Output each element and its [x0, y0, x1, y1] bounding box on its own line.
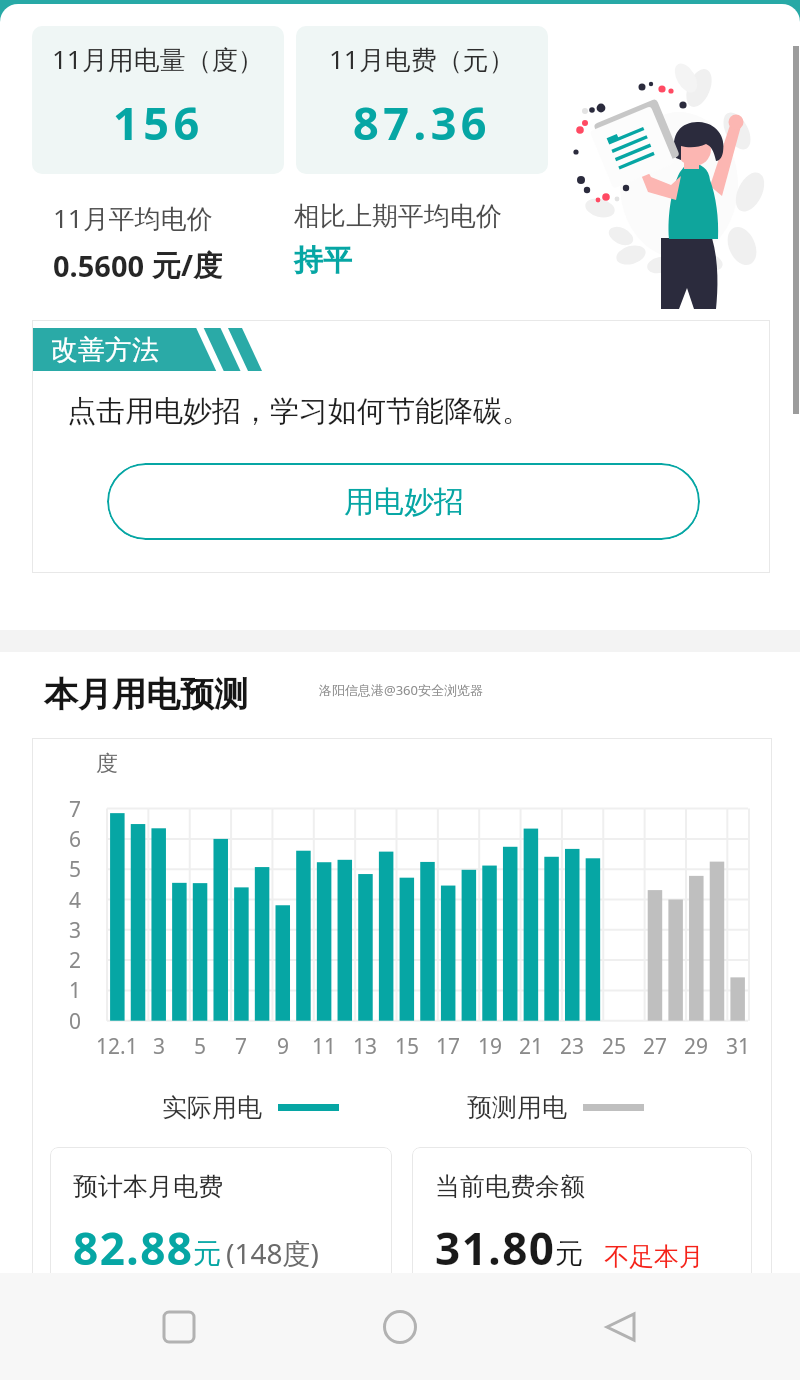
button[interactable]: 用电妙招	[107, 463, 700, 540]
staticText: (148度)	[226, 1234, 319, 1272]
staticText: 元	[555, 1236, 583, 1271]
staticText: 1	[69, 976, 82, 1005]
staticText: 改善方法	[51, 333, 159, 367]
staticText: 13	[353, 1032, 378, 1060]
staticText: 不足本月	[604, 1241, 704, 1272]
staticText: 0	[69, 1007, 82, 1036]
staticText: 用电妙招	[344, 483, 464, 521]
staticText: 预计本月电费	[73, 1171, 223, 1202]
button[interactable]: Back	[579, 1285, 663, 1369]
staticText: 实际用电	[162, 1092, 262, 1123]
staticText: 19	[478, 1032, 503, 1060]
staticText: 洛阳信息港@360安全浏览器	[319, 681, 483, 699]
staticText: 29	[684, 1032, 709, 1060]
button[interactable]: Home	[358, 1285, 442, 1369]
staticText: 21	[519, 1032, 544, 1060]
staticText: 本月用电预测	[44, 673, 248, 716]
staticText: 点击用电妙招，学习如何节能降碳。	[67, 393, 531, 430]
staticText: 25	[602, 1032, 627, 1060]
staticText: 2	[69, 946, 82, 975]
staticText: 3	[153, 1032, 166, 1060]
staticText: 23	[560, 1032, 585, 1060]
staticText: 82.88	[73, 1218, 194, 1278]
staticText: 相比上期平均电价	[294, 200, 502, 233]
staticText: 27	[643, 1032, 668, 1060]
staticText: 7	[235, 1032, 248, 1060]
staticText: 预测用电	[467, 1092, 567, 1123]
staticText: 4	[69, 886, 82, 915]
staticText: 5	[69, 855, 82, 884]
staticText: 15	[395, 1032, 420, 1060]
staticText: 5	[194, 1032, 207, 1060]
staticText: 31.80	[435, 1218, 556, 1278]
staticText: 87.36	[353, 92, 492, 153]
button[interactable]: 11月电费（元）	[296, 26, 548, 174]
staticText: 11月电费（元）	[329, 41, 515, 77]
button[interactable]: 11月用电量（度）	[32, 26, 284, 174]
staticText: 7	[69, 795, 82, 824]
staticText: 156	[113, 92, 204, 153]
staticText: 持平	[294, 242, 352, 279]
staticText: 元/度	[152, 245, 223, 285]
button[interactable]: 当前电费余额	[412, 1147, 752, 1347]
staticText: 6	[69, 825, 82, 854]
staticText: 11月平均电价	[53, 200, 213, 236]
staticText: 0.5600	[53, 246, 145, 285]
staticText: 元	[193, 1236, 221, 1271]
staticText: 11	[312, 1032, 337, 1060]
staticText: 31	[726, 1032, 751, 1060]
staticText: 当前电费余额	[435, 1171, 585, 1202]
staticText: 12.1	[96, 1032, 138, 1060]
staticText: 3	[69, 916, 82, 945]
staticText: 11月用电量（度）	[52, 41, 264, 77]
staticText: 17	[436, 1032, 461, 1060]
staticText: 9	[277, 1032, 290, 1060]
staticText: 度	[96, 750, 118, 778]
button[interactable]: 预计本月电费	[50, 1147, 392, 1347]
button[interactable]: Recent apps	[137, 1285, 221, 1369]
